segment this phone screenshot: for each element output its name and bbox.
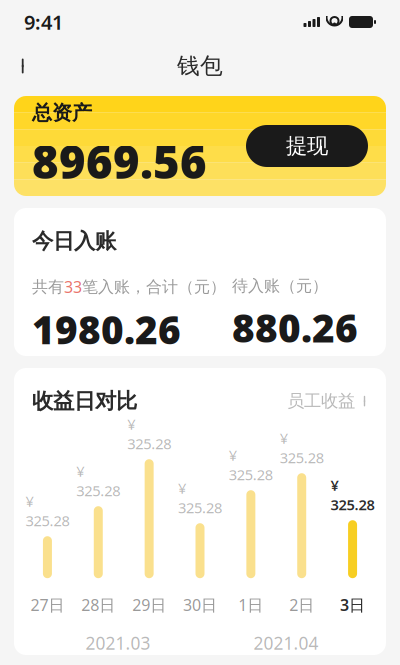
staticText: 提现 bbox=[286, 133, 328, 159]
staticText: 8969.56 bbox=[32, 131, 207, 191]
staticText: 27日 bbox=[30, 594, 64, 615]
staticText: ¥ 325.28 bbox=[76, 461, 120, 500]
button[interactable]: 提现 bbox=[246, 125, 368, 167]
staticText: 3日 bbox=[340, 594, 365, 615]
staticText: 1日 bbox=[238, 594, 263, 615]
staticText: 收益日对比 bbox=[32, 388, 137, 414]
staticText: 2日 bbox=[289, 594, 314, 615]
staticText: 1980.26 bbox=[32, 303, 181, 355]
staticText: 33 bbox=[64, 276, 82, 297]
staticText: 2021.04 bbox=[253, 631, 318, 654]
staticText: 员工收益 bbox=[287, 390, 355, 412]
staticText: ¥ 325.28 bbox=[178, 478, 222, 517]
staticText: 钱包 bbox=[177, 52, 223, 80]
staticText: ¥ 325.28 bbox=[331, 475, 375, 514]
button[interactable]: 返回 bbox=[4, 44, 44, 88]
staticText: ¥ 325.28 bbox=[280, 428, 324, 467]
staticText: 2021.03 bbox=[85, 631, 150, 654]
staticText: 待入账（元） bbox=[232, 276, 328, 296]
staticText: 笔入账，合计（元） bbox=[82, 277, 226, 297]
staticText: 总资产 bbox=[32, 101, 92, 125]
staticText: ¥ 325.28 bbox=[25, 491, 69, 530]
button[interactable]: 员工收益 bbox=[287, 390, 368, 412]
staticText: 29日 bbox=[132, 594, 166, 615]
staticText: 880.26 bbox=[232, 302, 358, 353]
staticText: 30日 bbox=[183, 594, 217, 615]
staticText: ¥ 325.28 bbox=[229, 445, 273, 484]
staticText: 9:41 bbox=[24, 9, 63, 35]
staticText: ¥ 325.28 bbox=[127, 414, 171, 453]
staticText: 共有 bbox=[32, 277, 64, 297]
staticText: 今日入账 bbox=[32, 228, 116, 254]
staticText: 28日 bbox=[81, 594, 115, 615]
